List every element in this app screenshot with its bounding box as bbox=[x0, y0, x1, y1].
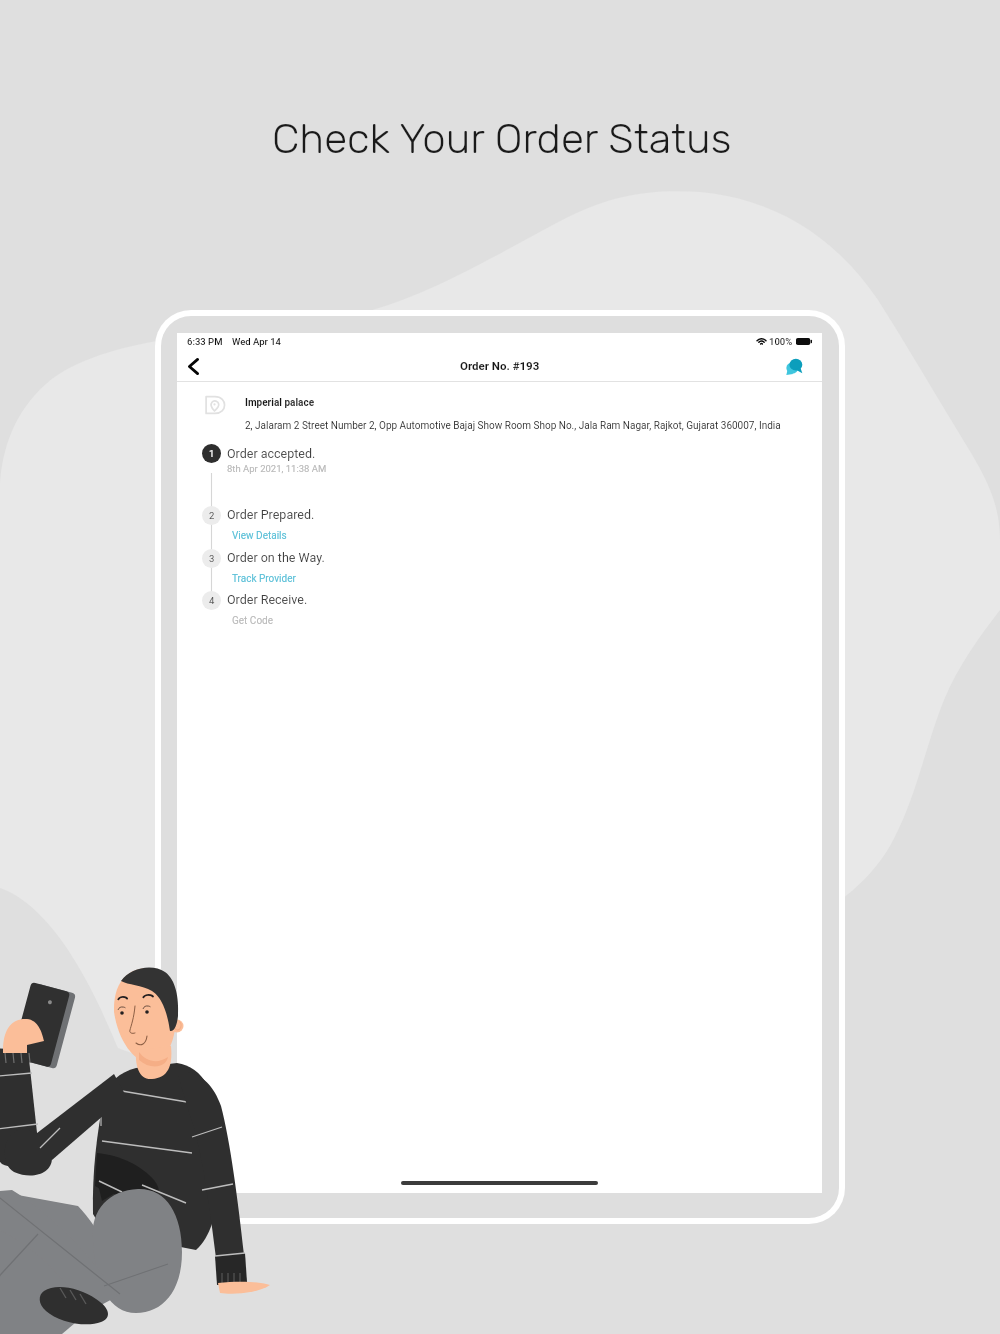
staticText: Order No. #193 bbox=[460, 359, 540, 372]
button[interactable]: Back bbox=[178, 351, 208, 381]
button[interactable]: View Details bbox=[232, 530, 287, 542]
staticText: Order accepted. bbox=[227, 446, 316, 461]
button[interactable]: 8th Apr 2021, 11:38 AM bbox=[227, 463, 327, 474]
staticText: 6:33 PM bbox=[187, 336, 223, 347]
staticText: Imperial palace bbox=[245, 397, 315, 409]
button[interactable]: Order accepted. bbox=[227, 446, 316, 461]
staticText: 4 bbox=[209, 595, 215, 606]
staticText: 2, Jalaram 2 Street Number 2, Opp Automo… bbox=[245, 420, 781, 432]
staticText: 1 bbox=[209, 448, 215, 459]
staticText: 3 bbox=[209, 553, 215, 564]
staticText: Order Receive. bbox=[227, 592, 308, 607]
staticText: Order on the Way. bbox=[227, 550, 325, 565]
staticText: 100% bbox=[769, 336, 793, 347]
staticText: 8th Apr 2021, 11:38 AM bbox=[227, 463, 327, 474]
button[interactable]: Order Prepared. bbox=[227, 507, 315, 522]
staticText: Order Prepared. bbox=[227, 507, 315, 522]
button[interactable]: Get Code bbox=[232, 615, 274, 627]
staticText: Track Provider bbox=[232, 573, 296, 585]
staticText: View Details bbox=[232, 530, 287, 542]
button[interactable]: Chat bbox=[780, 352, 808, 380]
staticText: Check Your Order Status bbox=[272, 114, 732, 164]
staticText: Get Code bbox=[232, 615, 274, 627]
staticText: Wed Apr 14 bbox=[232, 336, 282, 347]
button[interactable]: Order on the Way. bbox=[227, 550, 325, 565]
button[interactable]: Order Receive. bbox=[227, 592, 308, 607]
staticText: 2 bbox=[209, 510, 215, 521]
button[interactable]: Track Provider bbox=[232, 573, 296, 585]
